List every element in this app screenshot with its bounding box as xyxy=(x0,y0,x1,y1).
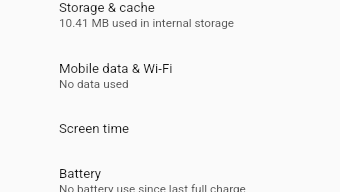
staticText: Mobile data & Wi-Fi xyxy=(59,61,173,77)
staticText: Storage & cache xyxy=(59,0,155,16)
button[interactable]: Screen time xyxy=(0,121,340,161)
staticText: Screen time xyxy=(59,121,130,137)
staticText: Battery xyxy=(59,166,102,182)
staticText: No data used xyxy=(59,77,129,91)
button[interactable]: Storage & cache xyxy=(0,0,340,56)
button[interactable]: Mobile data & Wi-Fi xyxy=(0,61,340,117)
button[interactable]: Battery xyxy=(0,166,340,192)
staticText: 10.41 MB used in internal storage xyxy=(59,16,235,30)
staticText: No battery use since last full charge xyxy=(59,182,246,192)
